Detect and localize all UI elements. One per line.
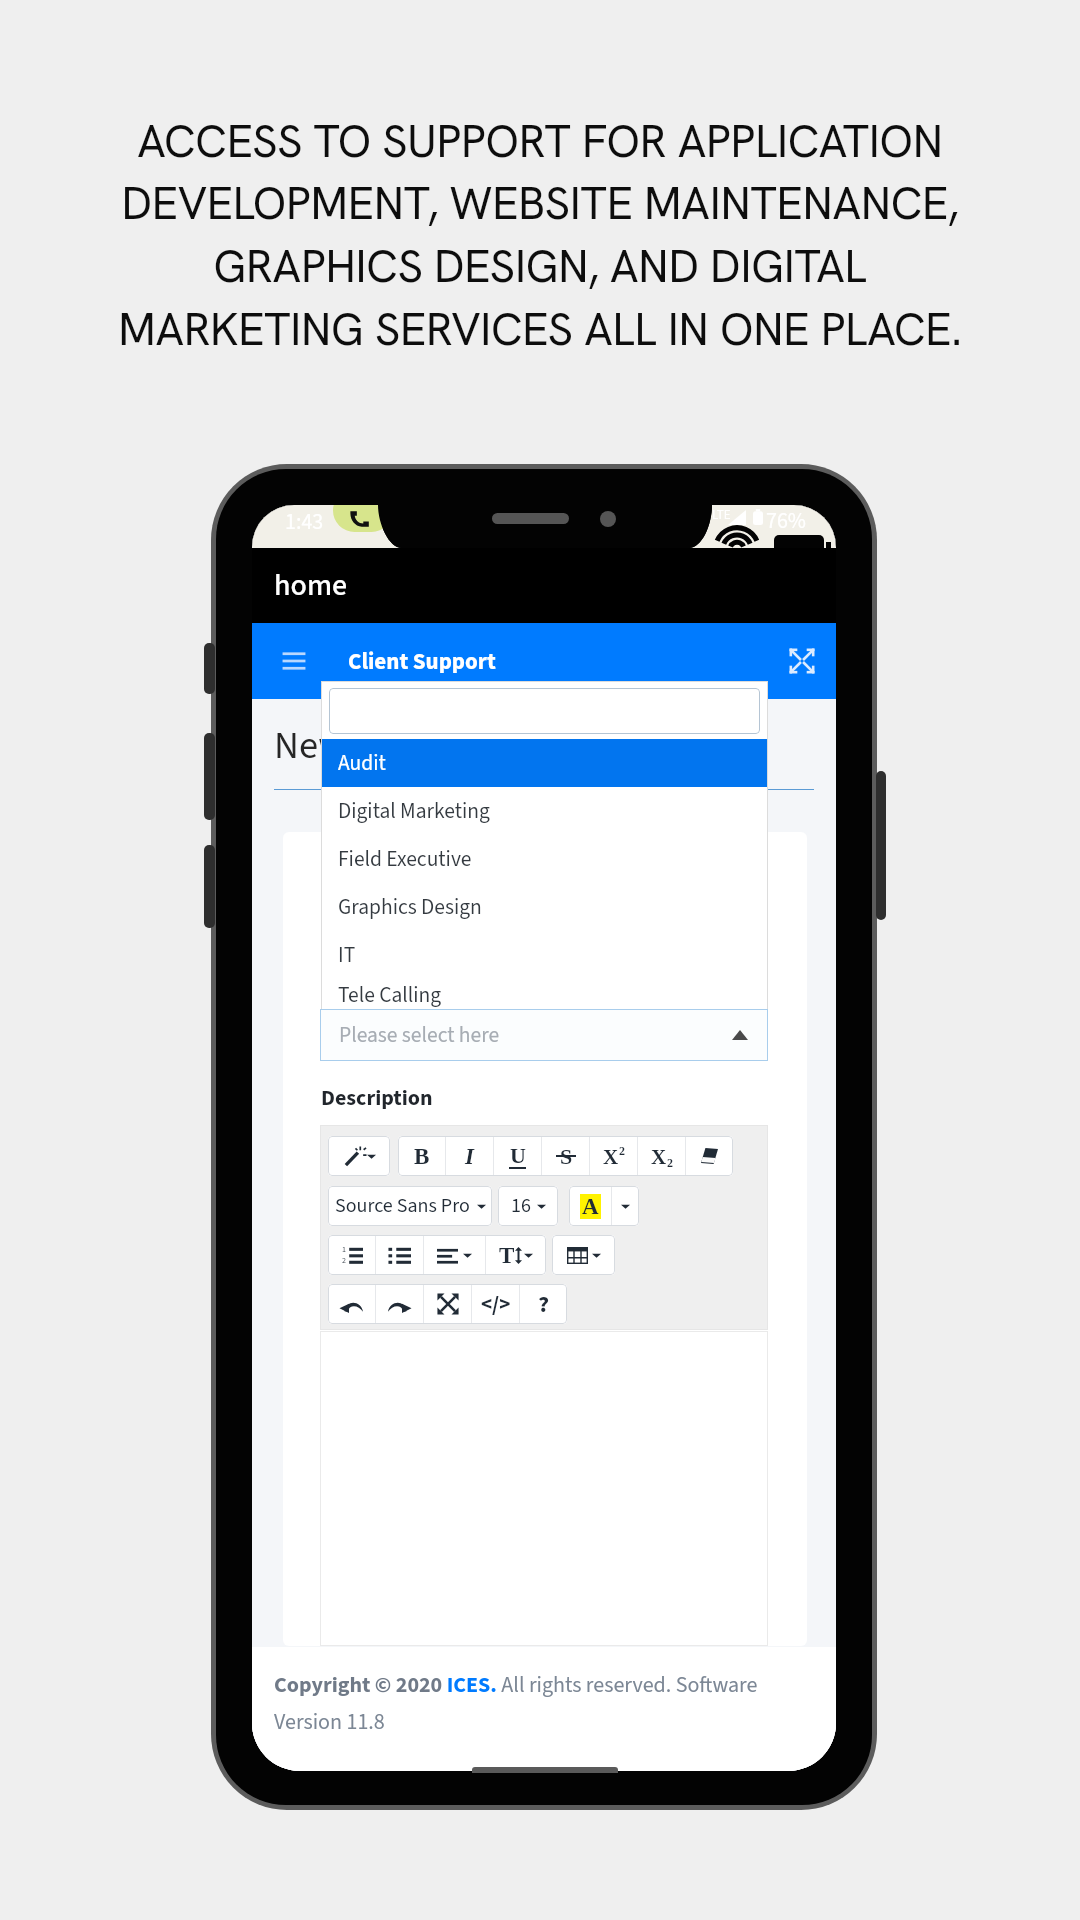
button[interactable]: Open navigation menu	[272, 639, 316, 683]
staticText: Audit	[338, 748, 386, 779]
button[interactable]: Audit	[321, 739, 768, 787]
staticText: I	[465, 1144, 474, 1169]
button[interactable]: Tele Calling	[321, 979, 768, 1012]
staticText: Graphics Design	[338, 892, 482, 923]
staticText: LTE	[712, 506, 731, 525]
staticText: Field Executive	[338, 844, 472, 875]
staticText: 1:43	[285, 506, 324, 537]
staticText: Source Sans Pro	[335, 1192, 470, 1220]
button[interactable]: Graphics Design	[321, 883, 768, 931]
staticText: S	[560, 1144, 573, 1168]
staticText: Client Support	[348, 645, 496, 678]
staticText: B	[414, 1144, 430, 1169]
staticText: 2	[342, 1255, 346, 1266]
button[interactable]: 1	[328, 1235, 375, 1275]
button[interactable]: X	[638, 1136, 685, 1176]
button[interactable]: Expand to fullscreen	[789, 648, 815, 674]
staticText: Description	[321, 1082, 433, 1113]
button[interactable]: U	[494, 1136, 541, 1176]
staticText: New	[274, 719, 346, 774]
button[interactable]: A	[569, 1186, 611, 1226]
staticText: home	[274, 564, 348, 607]
staticText: X	[651, 1145, 667, 1168]
staticText: ?	[538, 1287, 550, 1321]
button[interactable]: T	[486, 1235, 546, 1275]
button[interactable]: 16	[498, 1186, 558, 1226]
button[interactable]	[686, 1136, 733, 1176]
staticText: A	[582, 1194, 599, 1219]
button[interactable]	[376, 1284, 423, 1324]
staticText: 1	[342, 1244, 346, 1255]
button[interactable]	[424, 1284, 471, 1324]
button[interactable]: X	[590, 1136, 637, 1176]
button[interactable]	[328, 1284, 375, 1324]
staticText: Please select here	[339, 1020, 500, 1051]
staticText: 76%	[766, 505, 806, 536]
button[interactable]: B	[398, 1136, 445, 1176]
staticText: Copyright © 2020 ICES. All rights reserv…	[274, 1669, 764, 1737]
staticText: X	[603, 1145, 619, 1168]
staticText: Tele Calling	[338, 980, 442, 1011]
button[interactable]: IT	[321, 931, 768, 979]
button[interactable]: Source Sans Pro	[328, 1186, 492, 1226]
staticText: IT	[338, 940, 356, 971]
button[interactable]: S	[542, 1136, 589, 1176]
staticText: ACCESS TO SUPPORT FOR APPLICATION DEVELO…	[40, 112, 1040, 359]
button[interactable]	[329, 688, 760, 734]
button[interactable]: Digital Marketing	[321, 787, 768, 835]
button[interactable]	[424, 1235, 485, 1275]
button[interactable]	[552, 1235, 615, 1275]
staticText: Digital Marketing	[338, 796, 490, 827]
staticText: T	[499, 1243, 515, 1268]
staticText: U	[510, 1143, 526, 1167]
button[interactable]	[376, 1235, 423, 1275]
button[interactable]	[612, 1186, 639, 1226]
button[interactable]: I	[446, 1136, 493, 1176]
button[interactable]: Please select here	[320, 1009, 768, 1061]
staticText: 16	[511, 1192, 531, 1220]
button[interactable]	[328, 1136, 390, 1176]
button[interactable]: </>	[472, 1284, 519, 1324]
staticText: 2	[667, 1156, 673, 1169]
button[interactable]: Field Executive	[321, 835, 768, 883]
button[interactable]: ?	[520, 1284, 567, 1324]
staticText: 2	[619, 1144, 625, 1157]
staticText: </>	[481, 1289, 511, 1319]
